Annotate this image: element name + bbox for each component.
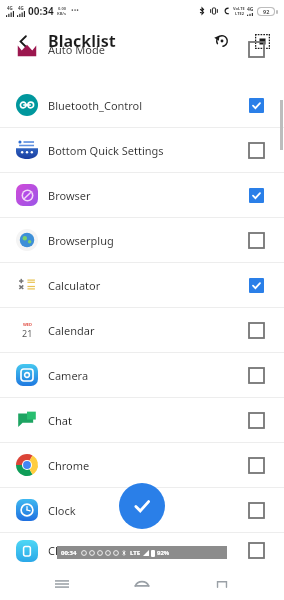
staticText: Bottom Quick Settings [48, 143, 249, 158]
staticText: Chrome [48, 458, 249, 473]
button[interactable]: Clock [0, 488, 284, 532]
button[interactable]: Recent apps [44, 568, 80, 600]
staticText: 4G [247, 6, 254, 13]
staticText: VoLTE [233, 6, 245, 11]
staticText: Auto Mode [48, 42, 249, 57]
button[interactable]: Browserplug [0, 218, 284, 262]
staticText: Browser [48, 188, 249, 203]
staticText: WED [23, 322, 33, 327]
button[interactable]: Bluetooth_Control [0, 83, 284, 127]
button[interactable]: Back [8, 26, 38, 56]
staticText: 92% [157, 549, 170, 557]
staticText: LTE2 [235, 11, 244, 16]
button[interactable]: Bottom Quick Settings [0, 128, 284, 172]
button[interactable]: Select all [248, 27, 276, 55]
staticText: Clock [48, 503, 249, 518]
button[interactable]: Home [124, 568, 160, 600]
staticText: KB/s [57, 11, 66, 16]
button[interactable]: Back [204, 568, 240, 600]
button[interactable]: Chrome [0, 443, 284, 487]
button[interactable]: Chat [0, 398, 284, 442]
staticText: 4G [18, 5, 24, 11]
staticText: Browserplug [48, 233, 249, 248]
staticText: LTE [130, 549, 141, 557]
button[interactable]: Camera [0, 353, 284, 397]
staticText: 00:34 [28, 4, 54, 18]
staticText: 0.00 [58, 6, 66, 11]
button[interactable]: Browser [0, 173, 284, 217]
staticText: Chat [48, 413, 249, 428]
button[interactable]: Confirm selection [119, 483, 165, 529]
staticText: CLONEit [48, 543, 249, 558]
button[interactable]: Calculator [0, 263, 284, 307]
staticText: 21 [22, 327, 33, 339]
button[interactable]: Restore [208, 27, 236, 55]
staticText: Calculator [48, 278, 249, 293]
staticText: Camera [48, 368, 249, 383]
staticText: Blacklist [48, 30, 116, 52]
button[interactable]: Auto Mode [0, 38, 284, 61]
staticText: ••• [71, 6, 79, 16]
button[interactable]: WED [0, 308, 284, 352]
staticText: 00:34 [61, 549, 77, 557]
button[interactable]: CLONEit [0, 533, 284, 568]
staticText: 4G [7, 5, 13, 11]
staticText: Calendar [48, 323, 249, 338]
staticText: 92 [263, 8, 270, 15]
staticText: Bluetooth_Control [48, 98, 249, 113]
